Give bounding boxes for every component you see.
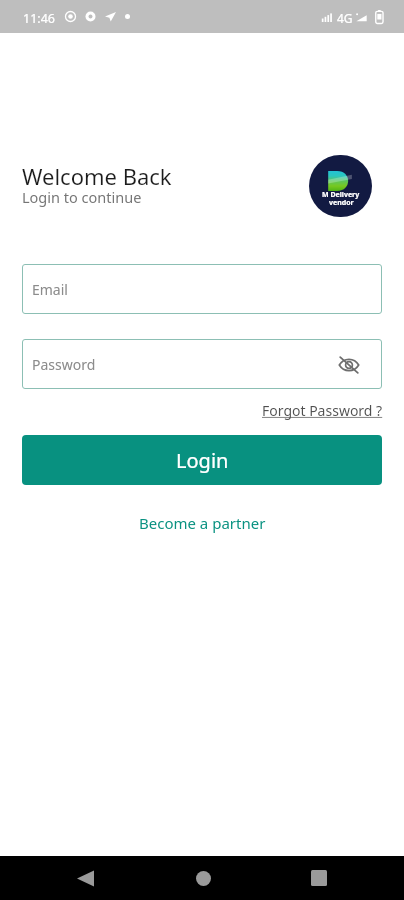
staticText: Become a partner (139, 513, 266, 533)
button[interactable]: Forgot Password ? (262, 401, 383, 420)
staticText: Email (32, 280, 68, 299)
button[interactable]: Show password (338, 354, 360, 376)
staticText: Login to continue (22, 187, 142, 207)
staticText: 4G (337, 10, 353, 26)
staticText: Forgot Password ? (262, 401, 383, 420)
button[interactable]: Password (22, 339, 382, 389)
button[interactable]: Recents (299, 858, 339, 898)
button[interactable]: Login (22, 435, 382, 485)
button[interactable]: Back (65, 858, 105, 898)
staticText: Welcome Back (22, 161, 172, 191)
button[interactable]: Home (183, 858, 223, 898)
staticText: 11:46 (23, 10, 55, 27)
staticText: Password (32, 355, 96, 374)
button[interactable]: Become a partner (139, 513, 266, 533)
staticText: M Delivery (322, 190, 360, 200)
button[interactable]: Email (22, 264, 382, 314)
staticText: Login (176, 447, 229, 474)
staticText: vendor (329, 198, 354, 208)
